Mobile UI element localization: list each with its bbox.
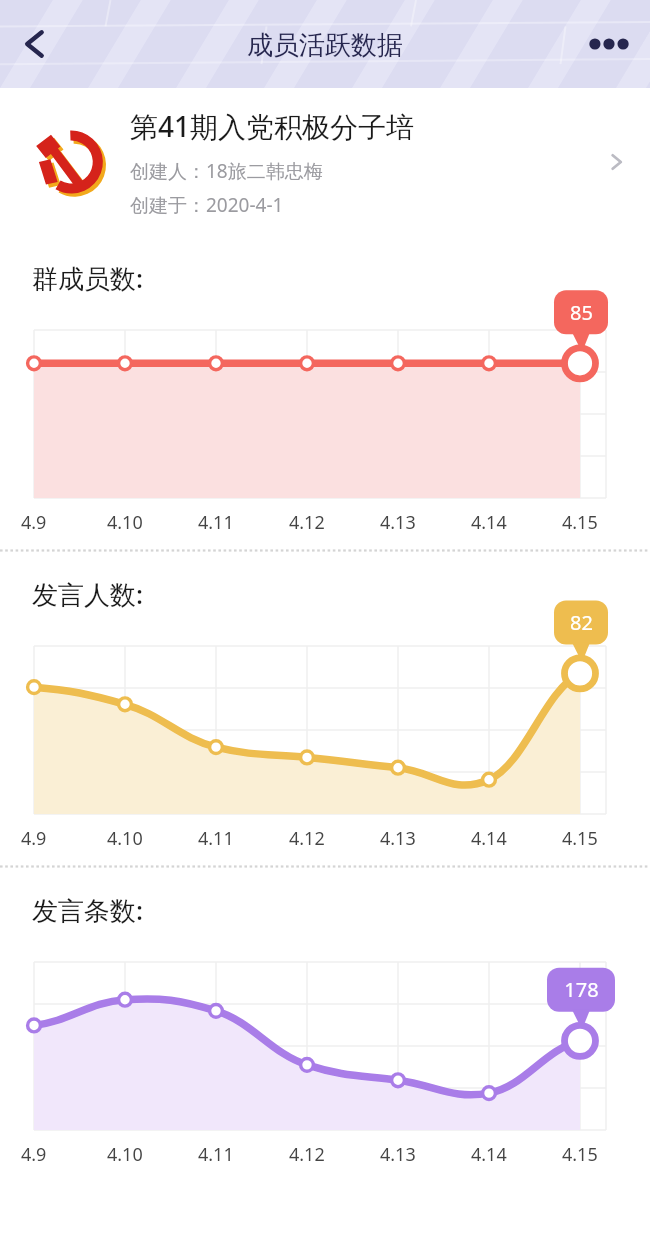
staticText: 创建于：2020-4-1 [130,192,284,218]
staticText: 4.14 [471,510,507,535]
staticText: 4.14 [471,1142,507,1167]
staticText: 4.10 [107,1142,143,1167]
staticText: 4.9 [21,510,47,535]
staticText: 第41期入党积极分子培 [130,107,415,145]
staticText: 4.15 [562,826,598,851]
staticText: 4.11 [198,826,234,851]
staticText: 4.14 [471,826,507,851]
staticText: 发言条数: [32,892,144,928]
staticText: 85 [570,299,593,326]
staticText: 4.12 [289,510,325,535]
staticText: 4.15 [562,510,598,535]
staticText: 4.13 [380,1142,416,1167]
staticText: 发言人数: [32,576,144,612]
staticText: 4.15 [562,1142,598,1167]
staticText: 成员活跃数据 [247,29,403,62]
button[interactable]: More options [580,15,638,73]
staticText: 4.13 [380,826,416,851]
staticText: 82 [570,609,593,636]
staticText: 4.10 [107,826,143,851]
staticText: 4.12 [289,1142,325,1167]
staticText: 创建人：18旅二韩忠梅 [130,158,323,184]
button[interactable]: 第41期入党积极分子培 [0,88,650,236]
staticText: 4.12 [289,826,325,851]
staticText: 群成员数: [32,260,144,296]
staticText: 4.10 [107,510,143,535]
staticText: 4.13 [380,510,416,535]
staticText: 4.9 [21,826,47,851]
staticText: 4.9 [21,1142,47,1167]
button[interactable]: Back [6,15,64,73]
staticText: 178 [564,976,599,1003]
staticText: 4.11 [198,1142,234,1167]
staticText: 4.11 [198,510,234,535]
